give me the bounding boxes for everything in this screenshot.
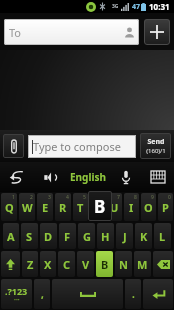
staticText: K <box>140 229 148 244</box>
button[interactable]: R <box>55 193 71 221</box>
staticText: Z <box>27 257 34 272</box>
button[interactable]: S <box>21 223 38 249</box>
staticText: 5 <box>83 194 86 201</box>
button[interactable]: .?123 <box>1 279 32 309</box>
staticText: 2 <box>30 194 33 201</box>
button[interactable]: Q <box>1 193 17 221</box>
button[interactable]: Add recipient <box>144 19 170 45</box>
button[interactable]: Delete <box>153 251 173 277</box>
staticText: O <box>144 200 153 215</box>
button[interactable]: N <box>115 251 132 277</box>
staticText: 3G <box>112 3 119 10</box>
staticText: U <box>110 200 119 215</box>
button[interactable]: , <box>34 279 50 309</box>
button[interactable]: G <box>78 223 95 249</box>
staticText: (160)/1 <box>146 147 166 155</box>
staticText: C <box>63 257 71 272</box>
staticText: .?123 <box>5 285 28 297</box>
button[interactable]: L <box>154 223 171 249</box>
staticText: Q <box>5 200 14 215</box>
staticText: To <box>9 25 22 40</box>
staticText: 8 <box>134 194 137 201</box>
button[interactable]: B <box>88 191 112 221</box>
staticText: S <box>26 229 33 244</box>
button[interactable]: D <box>40 223 57 249</box>
button[interactable]: To <box>4 19 139 45</box>
staticText: V <box>82 257 90 272</box>
button[interactable]: K <box>135 223 152 249</box>
staticText: Type to compose <box>33 139 121 154</box>
button[interactable]: Voice input <box>110 162 142 192</box>
button[interactable]: Shift <box>1 251 20 277</box>
button[interactable]: V <box>77 251 94 277</box>
staticText: 7 <box>117 194 120 201</box>
staticText: ••• <box>14 297 20 304</box>
staticText: 4 <box>66 194 69 201</box>
staticText: 3 <box>48 194 51 201</box>
staticText: 47 <box>132 2 141 12</box>
button[interactable]: A <box>3 223 19 249</box>
staticText: 1 <box>12 194 15 201</box>
button[interactable]: E <box>37 193 53 221</box>
button[interactable]: B <box>96 251 113 277</box>
button[interactable]: U <box>107 193 122 221</box>
staticText: L <box>159 229 166 244</box>
button[interactable]: . <box>125 279 141 309</box>
button[interactable]: Send <box>140 133 171 159</box>
staticText: English <box>70 170 106 184</box>
staticText: Send <box>147 137 165 147</box>
staticText: W <box>22 200 33 215</box>
staticText: H <box>101 229 110 244</box>
staticText: 0 <box>168 194 171 201</box>
button[interactable]: Keyboard settings <box>142 162 174 192</box>
staticText: P <box>162 200 169 215</box>
staticText: G <box>83 229 91 244</box>
staticText: X <box>44 257 52 272</box>
staticText: J <box>123 229 127 244</box>
staticText: 6 <box>100 194 103 201</box>
button[interactable]: Attach <box>3 134 24 158</box>
staticText: 10:31 <box>149 1 170 12</box>
staticText: B <box>94 195 106 218</box>
staticText: 9 <box>151 194 154 201</box>
button[interactable]: P <box>158 193 173 221</box>
button[interactable]: Space <box>52 279 123 309</box>
button[interactable]: C <box>58 251 75 277</box>
button[interactable]: F <box>59 223 76 249</box>
button[interactable]: English <box>65 162 110 192</box>
other: Pick contact <box>123 26 136 39</box>
button[interactable]: Swype <box>0 162 33 192</box>
staticText: R <box>59 200 67 215</box>
button[interactable]: H <box>97 223 114 249</box>
staticText: I <box>129 200 134 215</box>
button[interactable]: O <box>141 193 156 221</box>
button[interactable]: Type to compose <box>28 135 136 158</box>
staticText: D <box>44 229 53 244</box>
button[interactable]: Sound <box>33 162 65 192</box>
button[interactable]: X <box>40 251 56 277</box>
staticText: . <box>132 287 135 301</box>
button[interactable]: Z <box>22 251 38 277</box>
staticText: , <box>41 287 44 301</box>
button[interactable]: Enter <box>143 279 173 309</box>
button[interactable]: T <box>73 193 88 221</box>
staticText: B <box>101 257 109 272</box>
staticText: F <box>64 229 71 244</box>
staticText: T <box>77 200 84 215</box>
staticText: Y <box>94 200 101 215</box>
staticText: N <box>119 257 128 272</box>
button[interactable]: M <box>134 251 151 277</box>
button[interactable]: W <box>19 193 35 221</box>
button[interactable]: Y <box>90 193 105 221</box>
button[interactable]: I <box>124 193 139 221</box>
staticText: A <box>7 229 15 244</box>
button[interactable]: J <box>116 223 133 249</box>
staticText: E <box>42 200 49 215</box>
staticText: M <box>137 257 148 272</box>
